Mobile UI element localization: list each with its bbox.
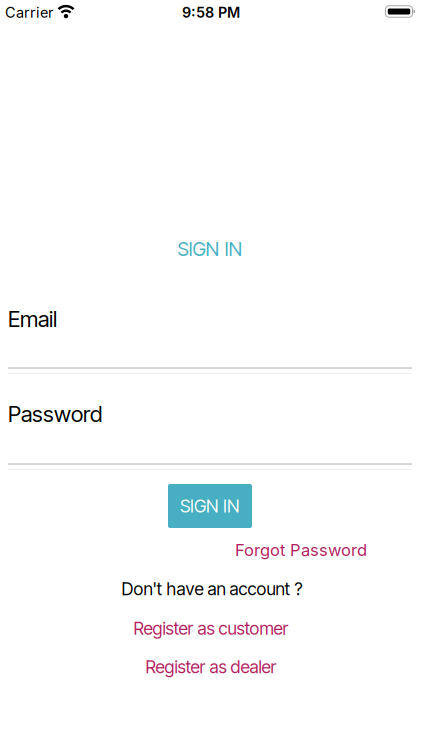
textField[interactable]: Email — [8, 306, 422, 332]
staticText: Don't have an account ? — [121, 578, 302, 599]
textField[interactable]: Password — [8, 401, 422, 427]
staticText: Password — [8, 401, 102, 427]
staticText: Email — [8, 306, 57, 332]
button[interactable]: Forgot Password — [235, 540, 367, 560]
staticText: Forgot Password — [235, 540, 367, 560]
button[interactable]: SIGN IN — [168, 484, 252, 528]
staticText: Carrier — [5, 4, 53, 21]
staticText: 9:58 PM — [182, 4, 240, 21]
staticText: Register as customer — [133, 618, 288, 639]
staticText: Register as dealer — [145, 656, 276, 677]
button[interactable]: Register as dealer — [145, 656, 276, 677]
staticText: Password — [8, 401, 102, 427]
staticText: SIGN IN — [177, 237, 242, 261]
button[interactable]: Register as customer — [133, 618, 288, 639]
staticText: SIGN IN — [180, 495, 240, 517]
staticText: Email — [8, 306, 57, 332]
